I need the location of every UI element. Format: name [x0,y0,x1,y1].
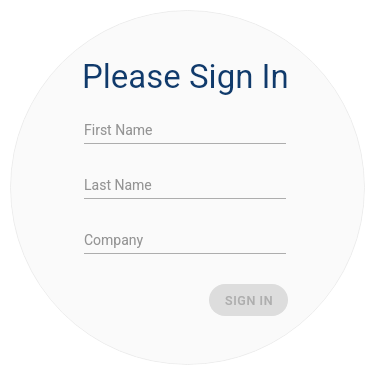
staticText: Last Name [84,177,152,193]
button[interactable]: First Name [84,122,286,144]
button[interactable]: SIGN IN [209,284,288,316]
staticText: Company [84,232,144,248]
staticText: First Name [84,122,153,138]
staticText: SIGN IN [225,293,274,308]
button[interactable]: Company [84,232,286,254]
button[interactable]: Last Name [84,177,286,199]
staticText: Please Sign In [82,57,289,96]
